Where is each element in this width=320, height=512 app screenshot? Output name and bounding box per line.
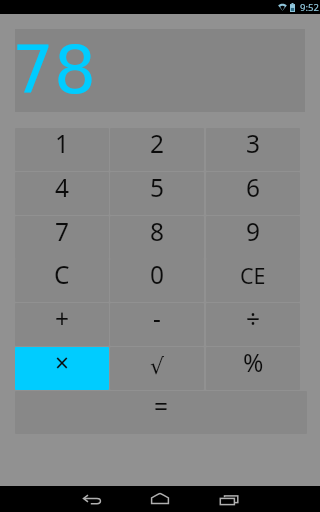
- button[interactable]: C: [15, 259, 109, 302]
- button[interactable]: Recent apps: [204, 486, 254, 512]
- staticText: %: [243, 347, 264, 379]
- staticText: -: [153, 303, 161, 335]
- staticText: 0: [150, 259, 165, 291]
- button[interactable]: 5: [110, 172, 204, 215]
- button[interactable]: 2: [110, 128, 204, 171]
- button[interactable]: 3: [206, 128, 300, 171]
- button[interactable]: 0: [110, 259, 204, 302]
- button[interactable]: 1: [15, 128, 109, 171]
- staticText: 2: [150, 128, 165, 160]
- button[interactable]: +: [15, 303, 109, 346]
- staticText: CE: [240, 261, 266, 290]
- staticText: 9: [246, 216, 261, 248]
- staticText: ×: [55, 347, 70, 379]
- button[interactable]: 6: [206, 172, 300, 215]
- button[interactable]: CE: [206, 259, 300, 302]
- staticText: 5: [150, 172, 165, 204]
- button[interactable]: ×: [15, 347, 109, 390]
- button[interactable]: ÷: [206, 303, 300, 346]
- button[interactable]: 8: [110, 216, 204, 259]
- staticText: ÷: [246, 303, 261, 335]
- staticText: +: [55, 303, 70, 335]
- staticText: 1: [55, 128, 70, 160]
- button[interactable]: Home: [135, 486, 185, 512]
- staticText: 4: [55, 172, 70, 204]
- staticText: 78: [12, 32, 96, 109]
- staticText: 8: [150, 216, 165, 248]
- staticText: √: [150, 354, 165, 380]
- staticText: =: [154, 391, 169, 423]
- button[interactable]: Back: [68, 486, 116, 512]
- staticText: 9:52: [300, 1, 319, 14]
- button[interactable]: 7: [15, 216, 109, 259]
- button[interactable]: =: [15, 391, 307, 434]
- button[interactable]: 4: [15, 172, 109, 215]
- button[interactable]: %: [206, 347, 300, 390]
- staticText: 3: [246, 128, 261, 160]
- button[interactable]: -: [110, 303, 204, 346]
- button[interactable]: √: [110, 347, 204, 390]
- button[interactable]: 9: [206, 216, 300, 259]
- staticText: 7: [55, 216, 70, 248]
- staticText: C: [54, 259, 70, 291]
- staticText: 6: [246, 172, 261, 204]
